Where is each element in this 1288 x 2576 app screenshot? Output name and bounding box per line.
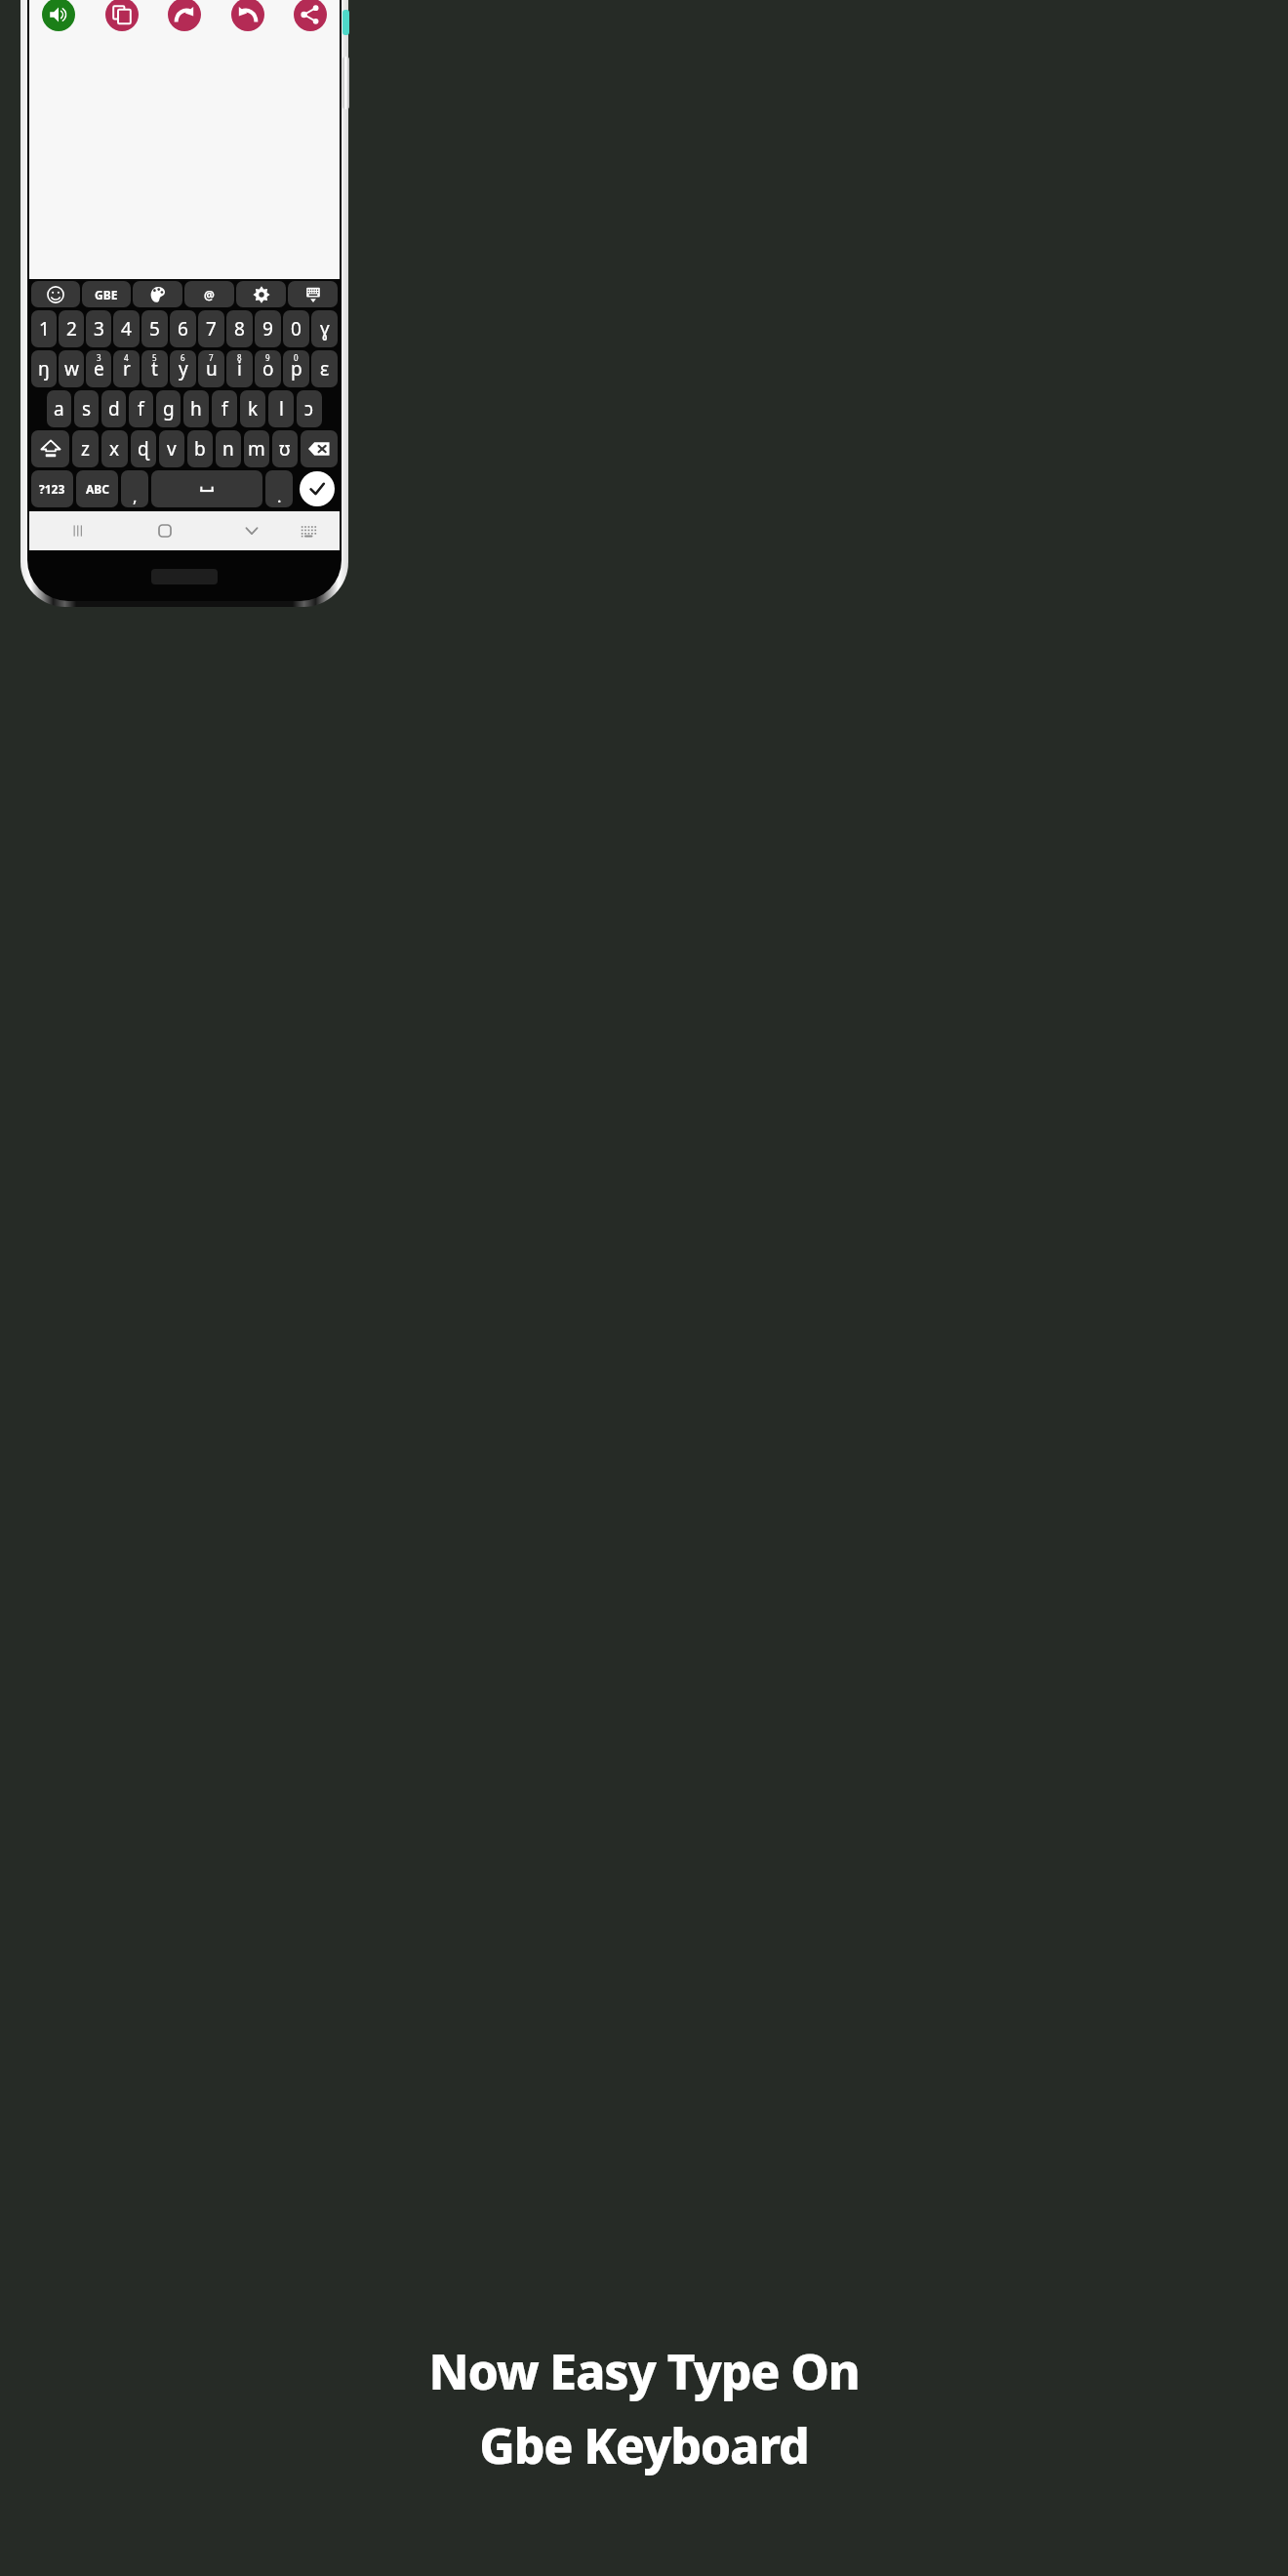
button[interactable]: z <box>72 430 99 467</box>
button[interactable]: 3 <box>86 310 111 347</box>
button[interactable]: Share <box>294 0 327 31</box>
staticText: l <box>279 396 284 422</box>
staticText: , <box>133 485 138 507</box>
button[interactable]: Backspace <box>301 430 338 467</box>
button[interactable]: . <box>265 470 293 507</box>
staticText: 8 <box>237 352 242 363</box>
button[interactable]: ʊ <box>272 430 298 467</box>
button[interactable]: h <box>183 390 209 427</box>
button[interactable]: m <box>244 430 269 467</box>
staticText: m <box>248 436 265 462</box>
button[interactable]: f <box>212 390 237 427</box>
button[interactable]: e <box>86 350 111 387</box>
button[interactable]: Switch keyboard <box>290 512 327 549</box>
button[interactable]: l <box>268 390 294 427</box>
staticText: 4 <box>124 352 129 363</box>
staticText: 0 <box>294 352 299 363</box>
button[interactable]: f <box>129 390 153 427</box>
button[interactable]: ?123 <box>31 470 73 507</box>
button[interactable]: i <box>226 350 253 387</box>
staticText: r <box>123 356 131 382</box>
button[interactable]: d <box>101 390 126 427</box>
button[interactable]: r <box>113 350 140 387</box>
button[interactable]: Speak <box>42 0 75 31</box>
button[interactable]: Hide keyboard <box>233 512 270 549</box>
button[interactable]: ɖ <box>131 430 156 467</box>
staticText: . <box>277 485 282 507</box>
button[interactable]: b <box>187 430 213 467</box>
button[interactable]: ABC <box>76 470 118 507</box>
button[interactable]: u <box>198 350 224 387</box>
staticText: n <box>222 436 234 462</box>
staticText: ?123 <box>39 481 65 497</box>
button[interactable]: 4 <box>113 310 140 347</box>
button[interactable]: Shift <box>31 430 69 467</box>
staticText: 2 <box>66 316 77 342</box>
staticText: ɛ <box>320 356 330 382</box>
staticText: o <box>262 356 274 382</box>
staticText: v <box>167 436 177 462</box>
button[interactable]: Side key <box>342 10 349 35</box>
button[interactable]: s <box>74 390 99 427</box>
button[interactable]: Toolbar action <box>133 281 182 307</box>
staticText: f <box>221 396 228 422</box>
button[interactable]: 6 <box>170 310 196 347</box>
button[interactable]: 2 <box>59 310 84 347</box>
button[interactable]: Enter <box>296 470 338 507</box>
button[interactable]: @ <box>184 281 234 307</box>
staticText: a <box>54 396 64 422</box>
staticText: t <box>151 356 158 382</box>
staticText: b <box>194 436 206 462</box>
staticText: 0 <box>291 316 302 342</box>
button[interactable]: o <box>255 350 281 387</box>
button[interactable]: 1 <box>31 310 57 347</box>
button[interactable]: 5 <box>141 310 168 347</box>
button[interactable]: ɣ <box>311 310 338 347</box>
button[interactable]: w <box>59 350 84 387</box>
button[interactable]: Toolbar action <box>288 281 338 307</box>
staticText: d <box>108 396 120 422</box>
staticText: y <box>179 356 188 382</box>
button[interactable]: p <box>283 350 309 387</box>
staticText: ɖ <box>138 436 149 462</box>
button[interactable]: a <box>47 390 71 427</box>
staticText: ɣ <box>320 316 330 342</box>
button[interactable]: Home <box>146 512 183 549</box>
button[interactable]: Power <box>342 57 349 109</box>
button[interactable]: GBE <box>82 281 131 307</box>
button[interactable]: Redo <box>168 0 201 31</box>
button[interactable]: 9 <box>255 310 281 347</box>
staticText: 1 <box>39 316 50 342</box>
staticText: s <box>82 396 92 422</box>
button[interactable]: Recents <box>60 512 97 549</box>
staticText: p <box>291 356 302 382</box>
button[interactable]: 7 <box>198 310 224 347</box>
button[interactable]: ŋ <box>31 350 57 387</box>
staticText: z <box>81 436 90 462</box>
button[interactable]: Toolbar action <box>236 281 286 307</box>
staticText: Now Easy Type On <box>428 2338 860 2404</box>
button[interactable]: n <box>216 430 241 467</box>
staticText: 3 <box>94 316 104 342</box>
staticText: e <box>94 356 104 382</box>
button[interactable]: Undo <box>231 0 264 31</box>
button[interactable]: 0 <box>283 310 309 347</box>
button[interactable]: Toolbar action <box>31 281 80 307</box>
staticText: @ <box>204 287 215 302</box>
button[interactable]: ɔ <box>297 390 322 427</box>
button[interactable]: Space <box>151 470 262 507</box>
staticText: Gbe Keyboard <box>479 2412 809 2478</box>
staticText: ʊ <box>279 436 291 462</box>
staticText: x <box>109 436 120 462</box>
button[interactable]: , <box>121 470 148 507</box>
button[interactable]: x <box>101 430 128 467</box>
button[interactable]: k <box>240 390 265 427</box>
button[interactable]: ɛ <box>311 350 338 387</box>
button[interactable]: y <box>170 350 196 387</box>
button[interactable]: g <box>156 390 181 427</box>
button[interactable]: 8 <box>226 310 253 347</box>
button[interactable]: t <box>141 350 168 387</box>
button[interactable]: v <box>159 430 184 467</box>
staticText: ABC <box>86 481 109 497</box>
button[interactable]: Copy <box>105 0 139 31</box>
